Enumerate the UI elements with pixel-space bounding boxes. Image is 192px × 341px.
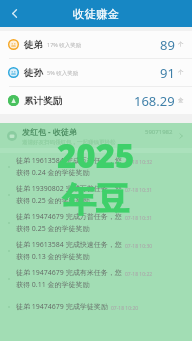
staticText: 徒弟 19613584 完成快速任务，您 (16, 240, 122, 250)
staticText: 获得 0.25 金的学徒奖励 (16, 196, 90, 206)
staticText: 发红包 - 收徒弟 (22, 126, 77, 137)
button[interactable]: Back (0, 0, 28, 27)
staticText: 累计奖励 (24, 95, 62, 107)
staticText: 07-18 10:31 (125, 187, 153, 194)
staticText: 获得 0.25 金的学徒奖励 (16, 224, 90, 234)
staticText: 徒孙 (24, 67, 43, 79)
staticText: 07-18 10:30 (125, 243, 153, 250)
staticText: 168.29 (134, 92, 175, 110)
staticText: 金 (178, 97, 184, 104)
staticText: 07-18 10:22 (125, 271, 153, 278)
staticText: 个 (178, 41, 184, 48)
button[interactable]: 发红包 - 收徒弟 (0, 123, 192, 148)
button[interactable]: 徒弟 19613584 完成快速任务，您 (0, 237, 192, 265)
staticText: 年豆 (63, 179, 129, 221)
staticText: 07-18 10:20 (111, 305, 139, 312)
staticText: 17% 收入奖励 (47, 41, 82, 49)
staticText: 徒弟 (24, 39, 43, 51)
staticText: 59071982 (145, 128, 173, 136)
button[interactable]: 徒孙 (0, 59, 192, 86)
staticText: 89 (160, 36, 175, 54)
staticText: 邀请好友扫码领红包，一起赚钱更轻松 (22, 139, 116, 146)
button[interactable]: 徒弟 19474679 完成万普任务，您 (0, 209, 192, 237)
staticText: 徒弟 19474679 完成万普任务，您 (16, 212, 122, 222)
staticText: 徒弟 19474679 完成学徒奖励 (16, 302, 108, 312)
staticText: 07-18 10:32 (125, 159, 153, 166)
staticText: 2025 (57, 133, 135, 178)
button[interactable]: 累计奖励 (0, 87, 192, 114)
staticText: 91 (160, 64, 175, 82)
staticText: 收徒赚金 (73, 7, 119, 21)
button[interactable]: 徒弟 19474679 完成学徒奖励 (0, 293, 192, 321)
staticText: 获得 0.24 金的学徒奖励 (16, 168, 90, 178)
button[interactable]: 徒弟 19474679 完成有米任务，您 (0, 265, 192, 293)
staticText: 07-18 10:31 (125, 215, 153, 222)
button[interactable]: 徒弟 19390802 完成万普任务，您 (0, 181, 192, 209)
staticText: 徒弟 19390802 完成万普任务，您 (16, 184, 122, 194)
other: Open invite (177, 132, 185, 140)
staticText: 获得 0.13 金的学徒奖励 (16, 252, 90, 262)
staticText: 5% 收入奖励 (47, 69, 79, 77)
staticText: 获得 0.11 金的学徒奖励 (16, 280, 90, 290)
staticText: 个 (178, 69, 184, 76)
button[interactable]: 徒弟 19613584 完成万普任务，您 (0, 153, 192, 181)
staticText: 徒弟 19613584 完成万普任务，您 (16, 156, 122, 166)
staticText: 徒弟 19474679 完成有米任务，您 (16, 268, 122, 278)
button[interactable]: 徒弟 (0, 31, 192, 58)
